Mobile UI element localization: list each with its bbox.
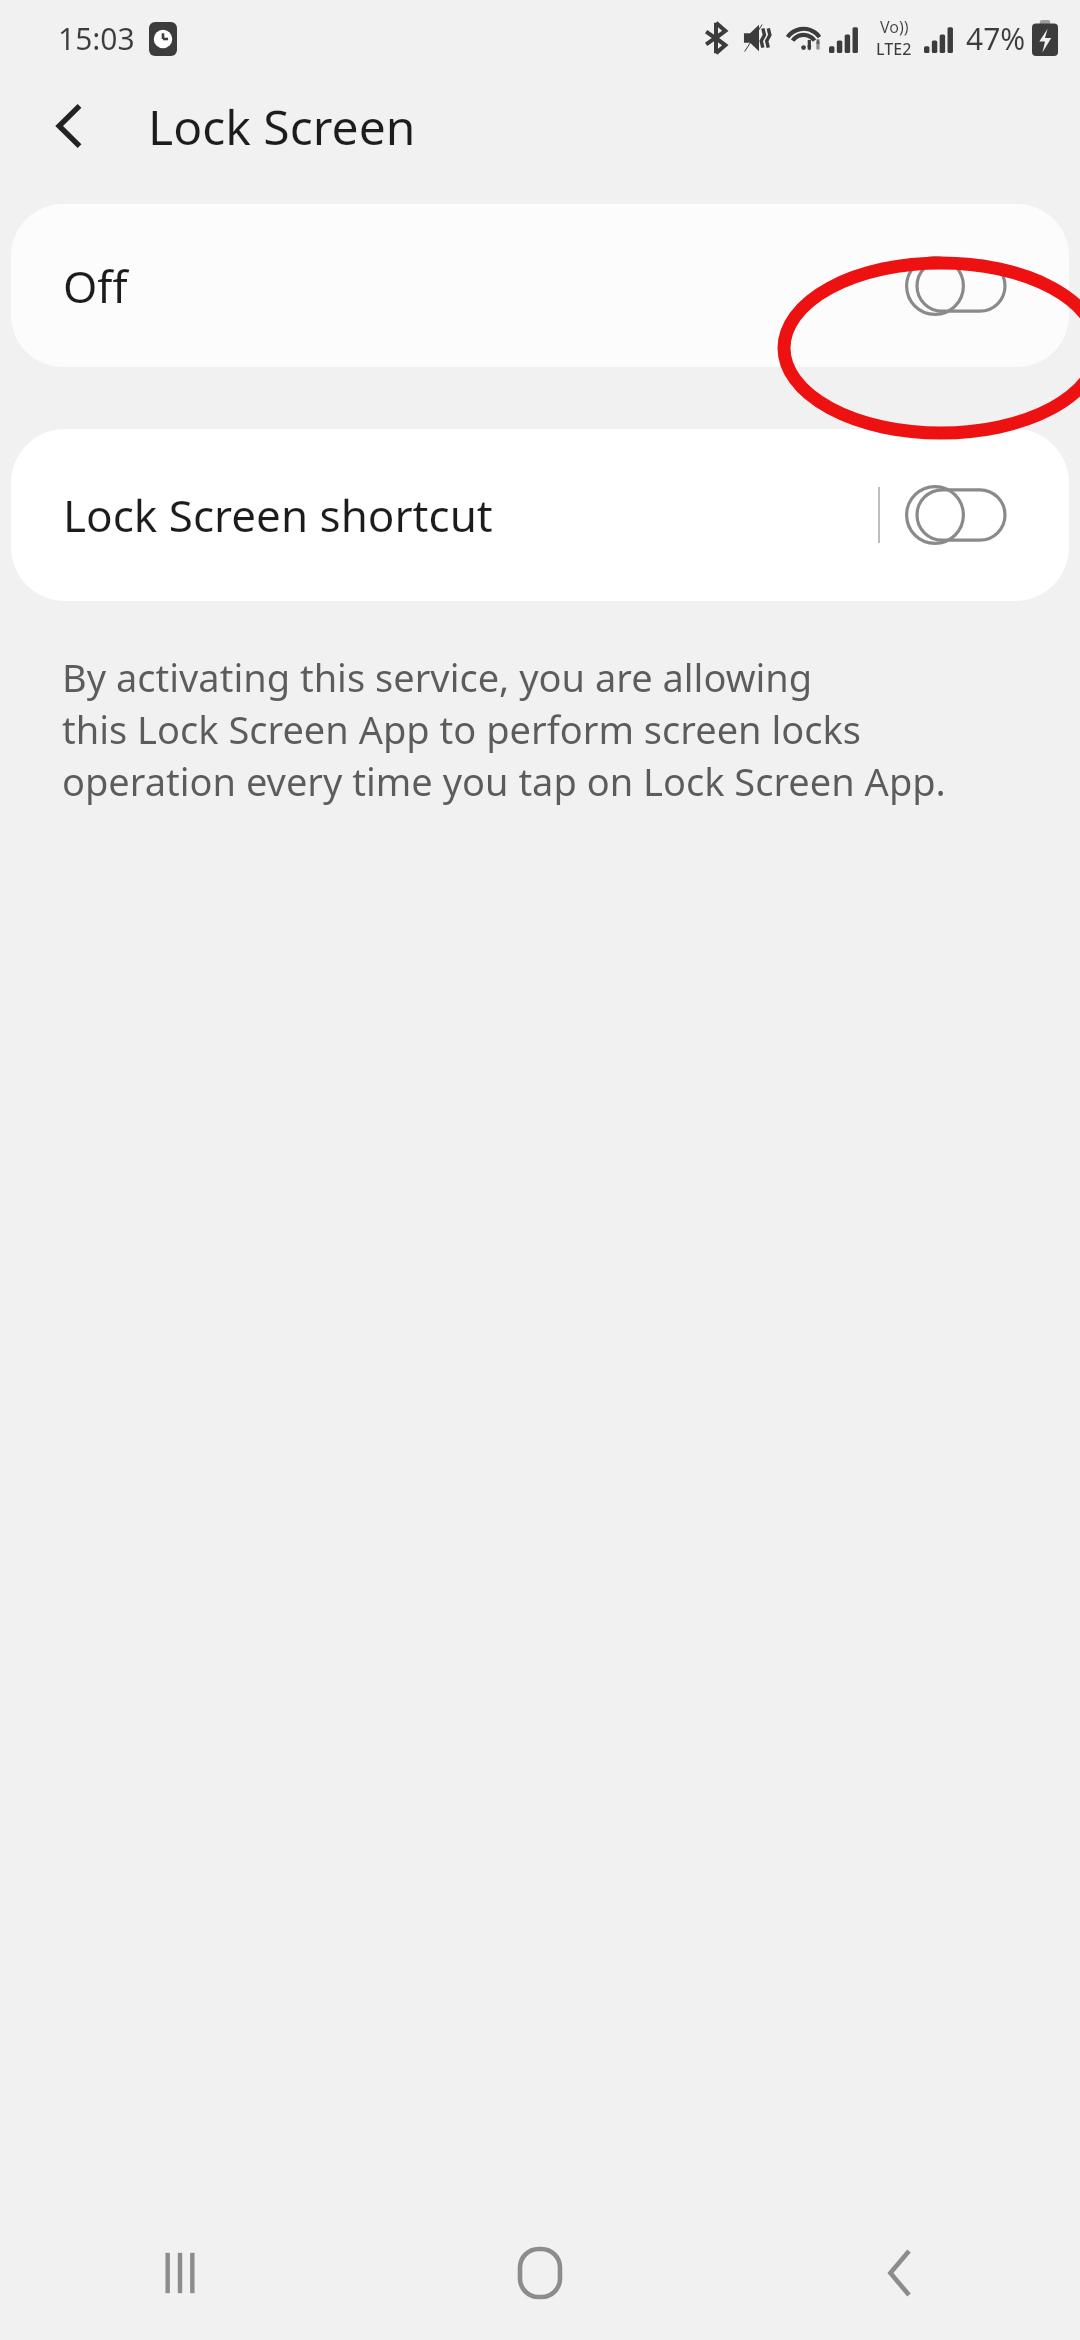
staticText: LTE2 (876, 38, 912, 60)
button[interactable]: Lock Screen shortcut (11, 429, 1069, 601)
staticText: By activating this service, you are allo… (62, 651, 813, 703)
staticText: operation every time you tap on Lock Scr… (62, 755, 946, 807)
button[interactable]: Off (11, 204, 1069, 367)
staticText: 15:03 (58, 18, 135, 59)
button[interactable]: Lock Screen service toggle, off (899, 251, 1011, 321)
staticText: Lock Screen (148, 94, 416, 159)
button[interactable]: Recents (0, 2205, 360, 2340)
button[interactable]: Lock Screen shortcut toggle, off (899, 480, 1011, 550)
button[interactable]: Back (720, 2205, 1080, 2340)
staticText: Off (63, 256, 128, 316)
button[interactable]: Home (360, 2205, 720, 2340)
staticText: this Lock Screen App to perform screen l… (62, 703, 861, 755)
staticText: 47% (966, 18, 1026, 59)
staticText: Vo)) (880, 16, 909, 38)
button[interactable]: Back (38, 94, 102, 158)
staticText: Lock Screen shortcut (63, 485, 493, 545)
